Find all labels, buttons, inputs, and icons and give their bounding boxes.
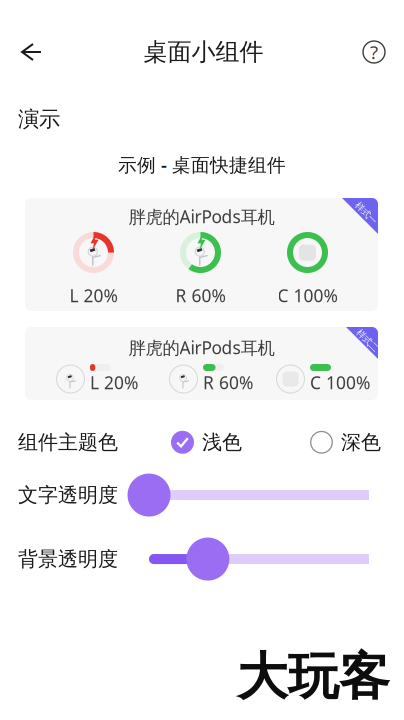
button[interactable]: 深色 (310, 430, 381, 455)
staticText: 背景透明度 (18, 547, 118, 571)
staticText: 样式二 (354, 335, 381, 346)
staticText: L 20% (90, 371, 138, 394)
staticText: 浅色 (202, 430, 242, 455)
staticText: 样式一 (353, 207, 380, 219)
staticText: ? (370, 40, 378, 64)
staticText: C 100% (277, 284, 337, 307)
staticText: 示例 - 桌面快捷组件 (118, 152, 286, 177)
staticText: 深色 (341, 430, 381, 455)
button[interactable]: 返回 (0, 28, 53, 76)
button[interactable]: 浅色 (171, 430, 242, 455)
staticText: 演示 (18, 106, 60, 132)
staticText: 胖虎的AirPods耳机 (128, 336, 274, 359)
staticText: C 100% (310, 371, 370, 394)
staticText: R 60% (175, 284, 225, 307)
staticText: 大玩客 (237, 646, 390, 708)
staticText: 桌面小组件 (143, 37, 263, 67)
staticText: R 60% (203, 371, 253, 394)
button[interactable]: 帮助 (354, 28, 404, 76)
staticText: L 20% (69, 284, 117, 307)
staticText: 胖虎的AirPods耳机 (128, 205, 274, 228)
staticText: 文字透明度 (18, 483, 118, 507)
staticText: 组件主题色 (18, 430, 118, 455)
